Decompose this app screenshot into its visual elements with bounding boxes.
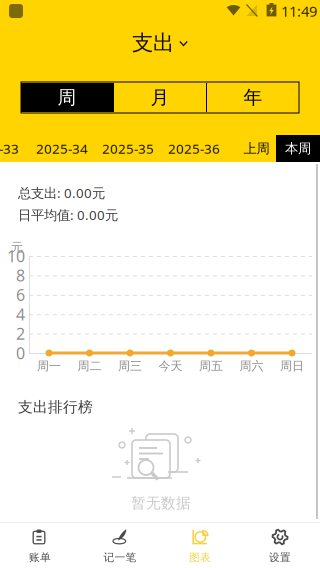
staticText: 0 (16, 342, 25, 364)
staticText: 2 (16, 323, 25, 344)
staticText: 账单 (29, 551, 51, 564)
staticText: 本周 (285, 140, 311, 157)
staticText: 年 (243, 86, 262, 109)
staticText: 月 (150, 86, 169, 109)
staticText: 2025-34 (36, 140, 88, 157)
staticText: 周二 (77, 359, 101, 373)
button[interactable]: 周 (21, 83, 113, 112)
staticText: 元 (11, 240, 23, 255)
button[interactable]: 2025-35 (95, 135, 161, 162)
staticText: 暂无数据 (131, 494, 191, 512)
staticText: 记一笔 (103, 551, 136, 564)
staticText: 周日 (280, 359, 304, 373)
staticText: 周一 (37, 359, 61, 373)
staticText: 6 (16, 284, 25, 305)
staticText: 2025-35 (102, 140, 154, 157)
button[interactable]: 记一笔 (80, 523, 160, 568)
staticText: 总支出: 0.00元 (18, 184, 105, 202)
staticText: 今天 (158, 359, 182, 373)
staticText: 周 (57, 86, 76, 109)
button[interactable]: 年 (207, 83, 299, 112)
button[interactable]: 图表 (160, 523, 240, 568)
staticText: 设置 (269, 551, 291, 564)
staticText: 4 (16, 304, 25, 325)
staticText: 周三 (118, 359, 142, 373)
staticText: 上周 (243, 140, 269, 157)
button[interactable]: 月 (114, 83, 206, 112)
button[interactable]: 上周 (232, 135, 281, 162)
button[interactable]: 2025-36 (161, 135, 227, 162)
staticText: 11:49 (281, 1, 317, 21)
button[interactable]: -33 (0, 135, 28, 162)
staticText: 8 (16, 265, 25, 286)
staticText: 周六 (239, 359, 263, 373)
button[interactable]: 2025-34 (29, 135, 95, 162)
staticText: 支出 (132, 30, 174, 56)
staticText: 10 (7, 245, 25, 267)
staticText: 周五 (199, 359, 223, 373)
button[interactable]: 账单 (0, 523, 80, 568)
button[interactable]: 支出 (122, 26, 198, 60)
staticText: 日平均值: 0.00元 (18, 206, 118, 224)
staticText: 2025-36 (168, 140, 220, 157)
staticText: 支出排行榜 (18, 398, 93, 416)
button[interactable]: 设置 (240, 523, 320, 568)
staticText: -33 (0, 140, 19, 157)
button[interactable]: 本周 (276, 135, 320, 162)
staticText: 图表 (189, 551, 211, 564)
